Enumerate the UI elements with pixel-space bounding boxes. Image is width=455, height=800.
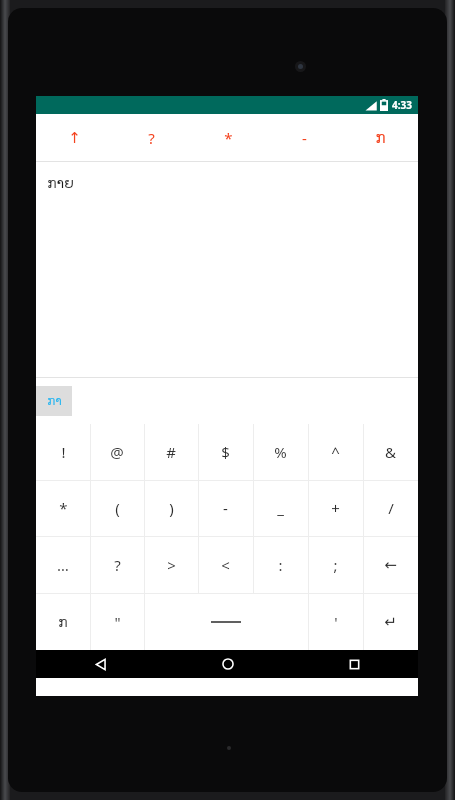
button[interactable]: : (253, 536, 308, 593)
button[interactable]: ກ (342, 114, 418, 161)
button[interactable]: Space (144, 593, 308, 650)
button[interactable]: * (36, 480, 90, 536)
staticText: ? (148, 128, 155, 148)
staticText: ! (61, 442, 66, 462)
staticText: ? (114, 555, 121, 575)
button[interactable]: @ (90, 424, 144, 480)
staticText: ↑ (68, 129, 81, 146)
staticText: > (167, 555, 176, 575)
staticText: " (114, 612, 121, 632)
staticText: / (388, 498, 394, 518)
staticText: * (224, 128, 233, 148)
staticText: 4:33 (392, 98, 412, 112)
button[interactable]: Backspace (363, 536, 418, 593)
staticText: < (221, 555, 230, 575)
button[interactable]: ) (144, 480, 198, 536)
button[interactable]: ກາ (36, 386, 72, 416)
button[interactable]: - (266, 114, 342, 161)
button[interactable]: & (363, 424, 418, 480)
button[interactable]: ກາຍ (36, 162, 418, 377)
staticText: ກ (375, 129, 386, 146)
staticText: ' (334, 612, 338, 632)
button[interactable]: ? (113, 114, 190, 161)
button[interactable]: # (144, 424, 198, 480)
staticText: ( (115, 498, 120, 518)
button[interactable]: " (90, 593, 144, 650)
button[interactable]: * (190, 114, 266, 161)
staticText: - (302, 128, 307, 148)
button[interactable]: ( (90, 480, 144, 536)
staticText: ↵ (384, 613, 397, 630)
button[interactable]: Enter (363, 593, 418, 650)
button[interactable]: _ (253, 480, 308, 536)
button[interactable]: % (253, 424, 308, 480)
button[interactable]: Back (36, 650, 164, 678)
staticText: & (385, 442, 396, 462)
button[interactable]: ກ (36, 593, 90, 650)
staticText: ) (169, 498, 174, 518)
button[interactable]: $ (198, 424, 253, 480)
button[interactable]: Home (164, 650, 291, 678)
button[interactable]: ↑ (36, 114, 113, 161)
staticText: ^ (331, 442, 340, 462)
staticText: - (223, 498, 228, 518)
staticText: # (166, 442, 176, 462)
staticText: + (331, 498, 340, 518)
button[interactable]: Recents (291, 650, 418, 678)
staticText: … (57, 555, 69, 575)
staticText: @ (110, 442, 124, 462)
staticText: ກ (58, 614, 68, 630)
staticText: ກາ (47, 394, 62, 408)
button[interactable]: > (144, 536, 198, 593)
button[interactable]: ^ (308, 424, 363, 480)
staticText: : (278, 555, 283, 575)
staticText: * (59, 498, 68, 518)
staticText: ← (384, 556, 397, 573)
button[interactable]: < (198, 536, 253, 593)
staticText: ; (333, 555, 338, 575)
button[interactable]: / (363, 480, 418, 536)
staticText: $ (221, 442, 230, 462)
button[interactable]: ; (308, 536, 363, 593)
staticText: _ (277, 498, 284, 518)
button[interactable]: ' (308, 593, 363, 650)
button[interactable]: - (198, 480, 253, 536)
button[interactable]: + (308, 480, 363, 536)
button[interactable]: ! (36, 424, 90, 480)
staticText: % (274, 442, 287, 462)
button[interactable]: ? (90, 536, 144, 593)
button[interactable]: … (36, 536, 90, 593)
staticText: ກາຍ (47, 175, 74, 191)
